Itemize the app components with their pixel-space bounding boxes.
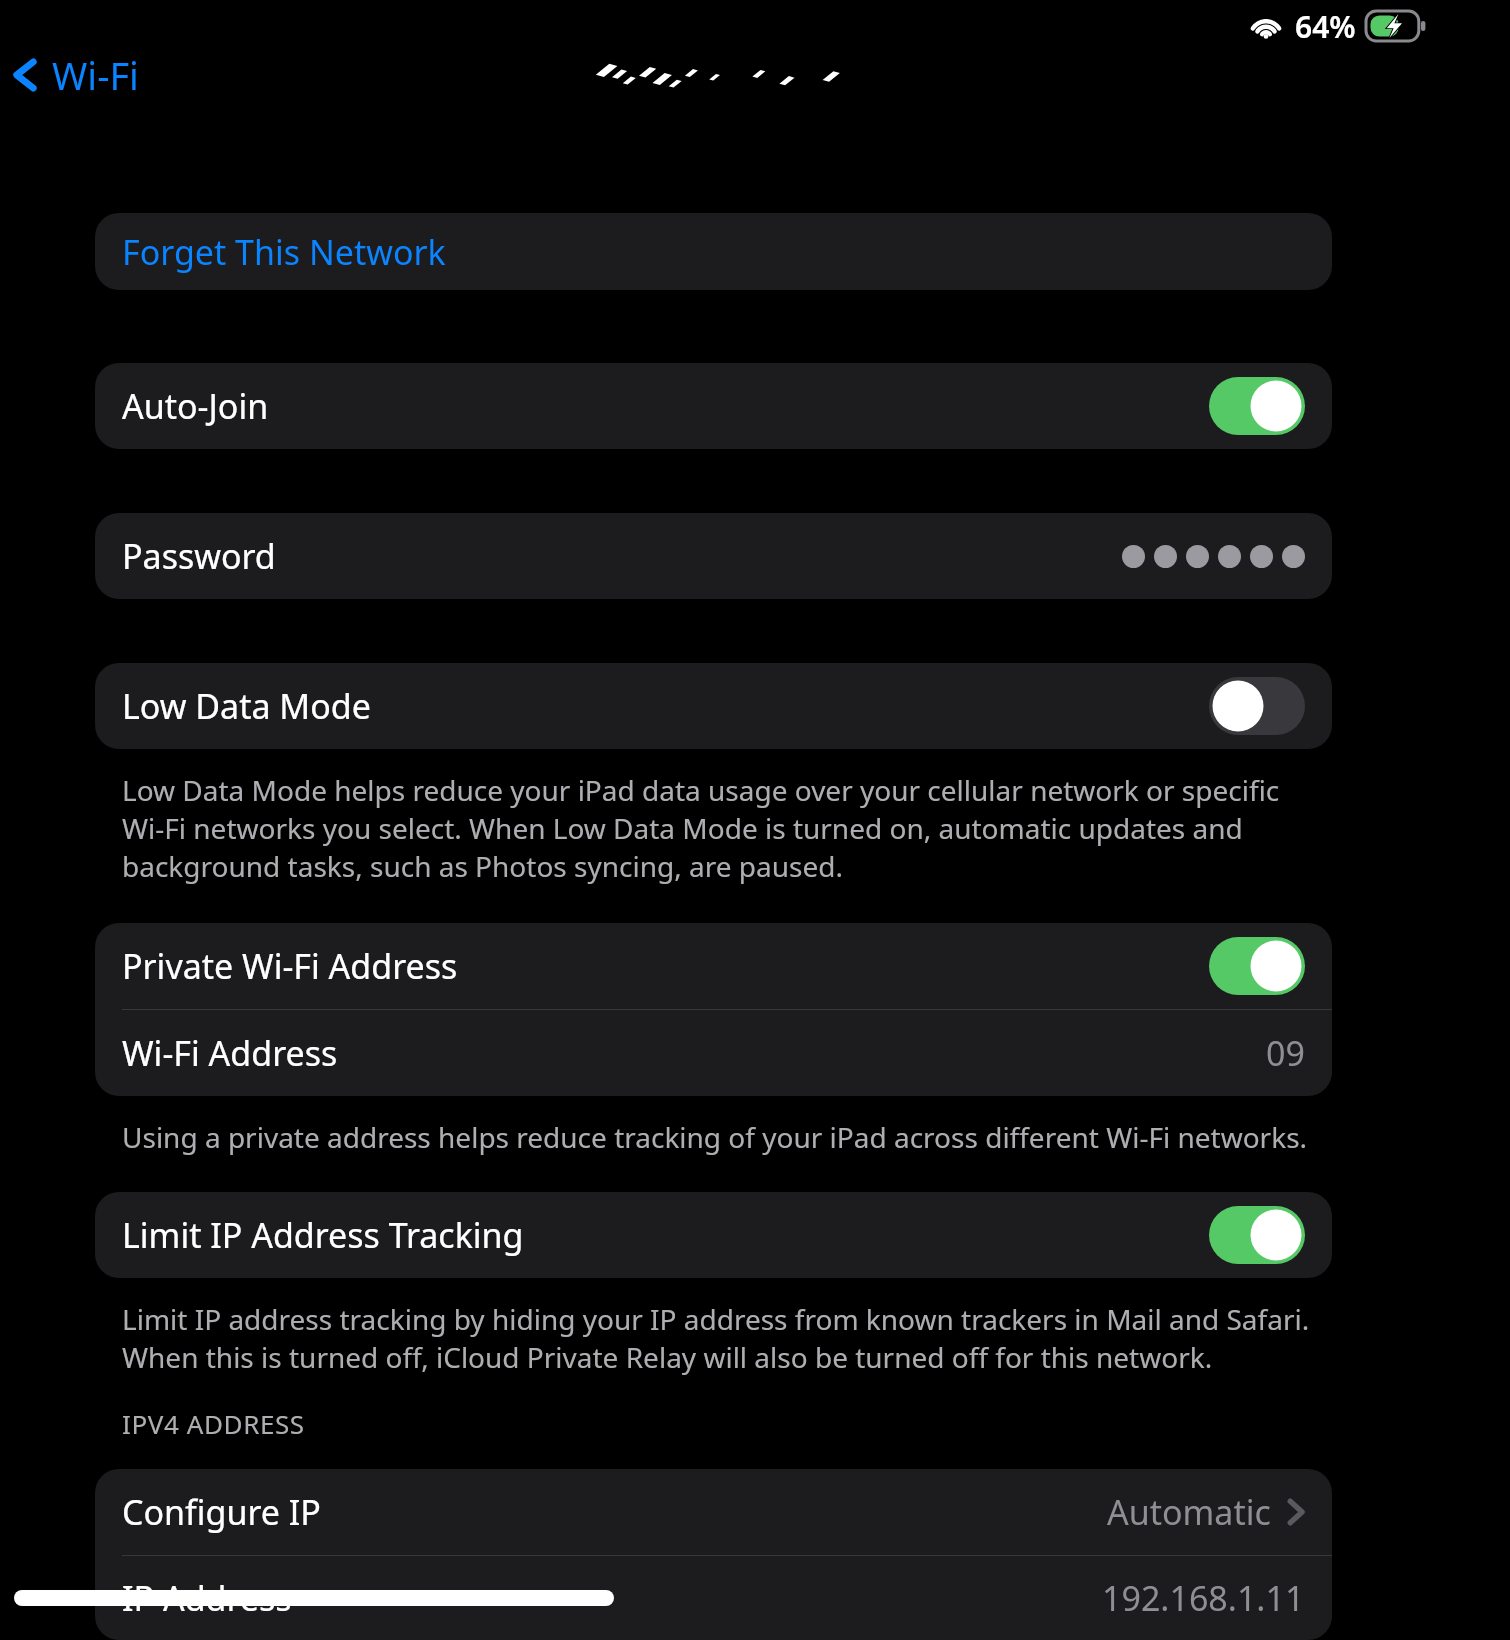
button[interactable]: Wi-Fi <box>4 43 147 107</box>
staticText: Forget This Network <box>122 229 446 275</box>
button[interactable]: On <box>1209 1206 1305 1264</box>
staticText: Low Data Mode helps reduce your iPad dat… <box>122 771 1318 885</box>
button[interactable]: On <box>1209 937 1305 995</box>
button[interactable]: Limit IP Address Tracking <box>95 1192 1332 1278</box>
staticText: Automatic <box>1107 1489 1271 1535</box>
staticText: Configure IP <box>122 1489 321 1535</box>
button[interactable]: Private Wi-Fi Address <box>95 923 1332 1009</box>
staticText: IPV4 ADDRESS <box>122 1406 305 1441</box>
button[interactable]: Password <box>95 513 1332 599</box>
staticText: Auto-Join <box>122 383 269 429</box>
button[interactable]: Off <box>1209 677 1305 735</box>
staticText: IP Address <box>122 1575 292 1621</box>
button[interactable]: On <box>1209 377 1305 435</box>
staticText: 192.168.1.11 <box>1102 1575 1305 1621</box>
staticText: Wi-Fi Address <box>122 1030 338 1076</box>
button[interactable]: Configure IP <box>95 1469 1332 1555</box>
button[interactable]: Forget This Network <box>95 213 1332 290</box>
staticText: 09 <box>1266 1030 1305 1076</box>
button[interactable]: IP Address <box>95 1556 1332 1640</box>
staticText: Wi-Fi <box>52 49 139 101</box>
button[interactable]: Wi-Fi Address <box>95 1010 1332 1096</box>
staticText: 64% <box>1295 6 1356 47</box>
button[interactable]: Low Data Mode <box>95 663 1332 749</box>
staticText: Limit IP address tracking by hiding your… <box>122 1300 1318 1376</box>
button[interactable]: Auto-Join <box>95 363 1332 449</box>
staticText: Password <box>122 533 276 579</box>
staticText: Low Data Mode <box>122 683 371 729</box>
staticText: Limit IP Address Tracking <box>122 1212 524 1258</box>
staticText: Using a private address helps reduce tra… <box>122 1118 1308 1156</box>
staticText: Private Wi-Fi Address <box>122 943 458 989</box>
